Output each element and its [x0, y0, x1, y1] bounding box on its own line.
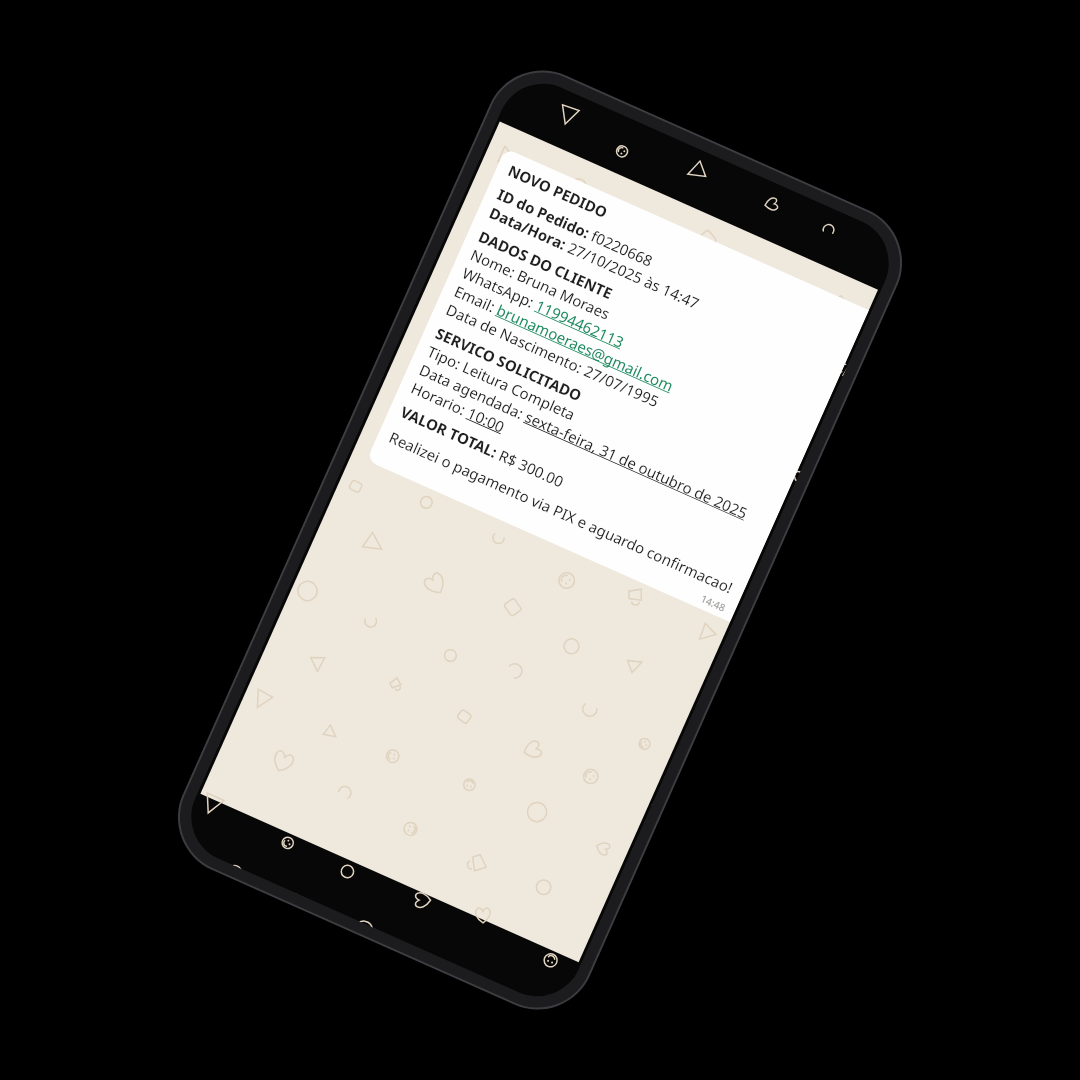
staticText: SERVICO SOLICITADO	[433, 323, 585, 405]
staticText: ID do Pedido: f0220668	[494, 184, 656, 271]
staticText: Data agendada: sexta-feira, 31 de outubr…	[416, 359, 751, 523]
staticText: Horario: 10:00	[408, 378, 508, 437]
staticText: DADOS DO CLIENTE	[476, 226, 616, 303]
button[interactable]: NOVO PEDIDO	[366, 148, 869, 622]
staticText: Data de Nascimento: 27/07/1995	[443, 299, 662, 411]
staticText: WhatsApp: 11994462113	[459, 263, 627, 352]
staticText: Email: brunamoeraes@gmail.com	[451, 281, 677, 396]
staticText: VALOR TOTAL: R$ 300.00	[398, 401, 567, 492]
staticText: Data/Hora: 27/10/2025 às 14:47	[486, 202, 703, 313]
staticText: Nome: Bruna Moraes	[468, 244, 614, 324]
staticText: Tipo: Leitura Completa	[424, 341, 579, 424]
other: Phone showing a WhatsApp order message	[159, 52, 921, 1028]
staticText: 14:48	[699, 591, 728, 615]
staticText: Realizei o pagamento via PIX e aguardo c…	[386, 427, 736, 597]
staticText: NOVO PEDIDO	[505, 160, 611, 222]
